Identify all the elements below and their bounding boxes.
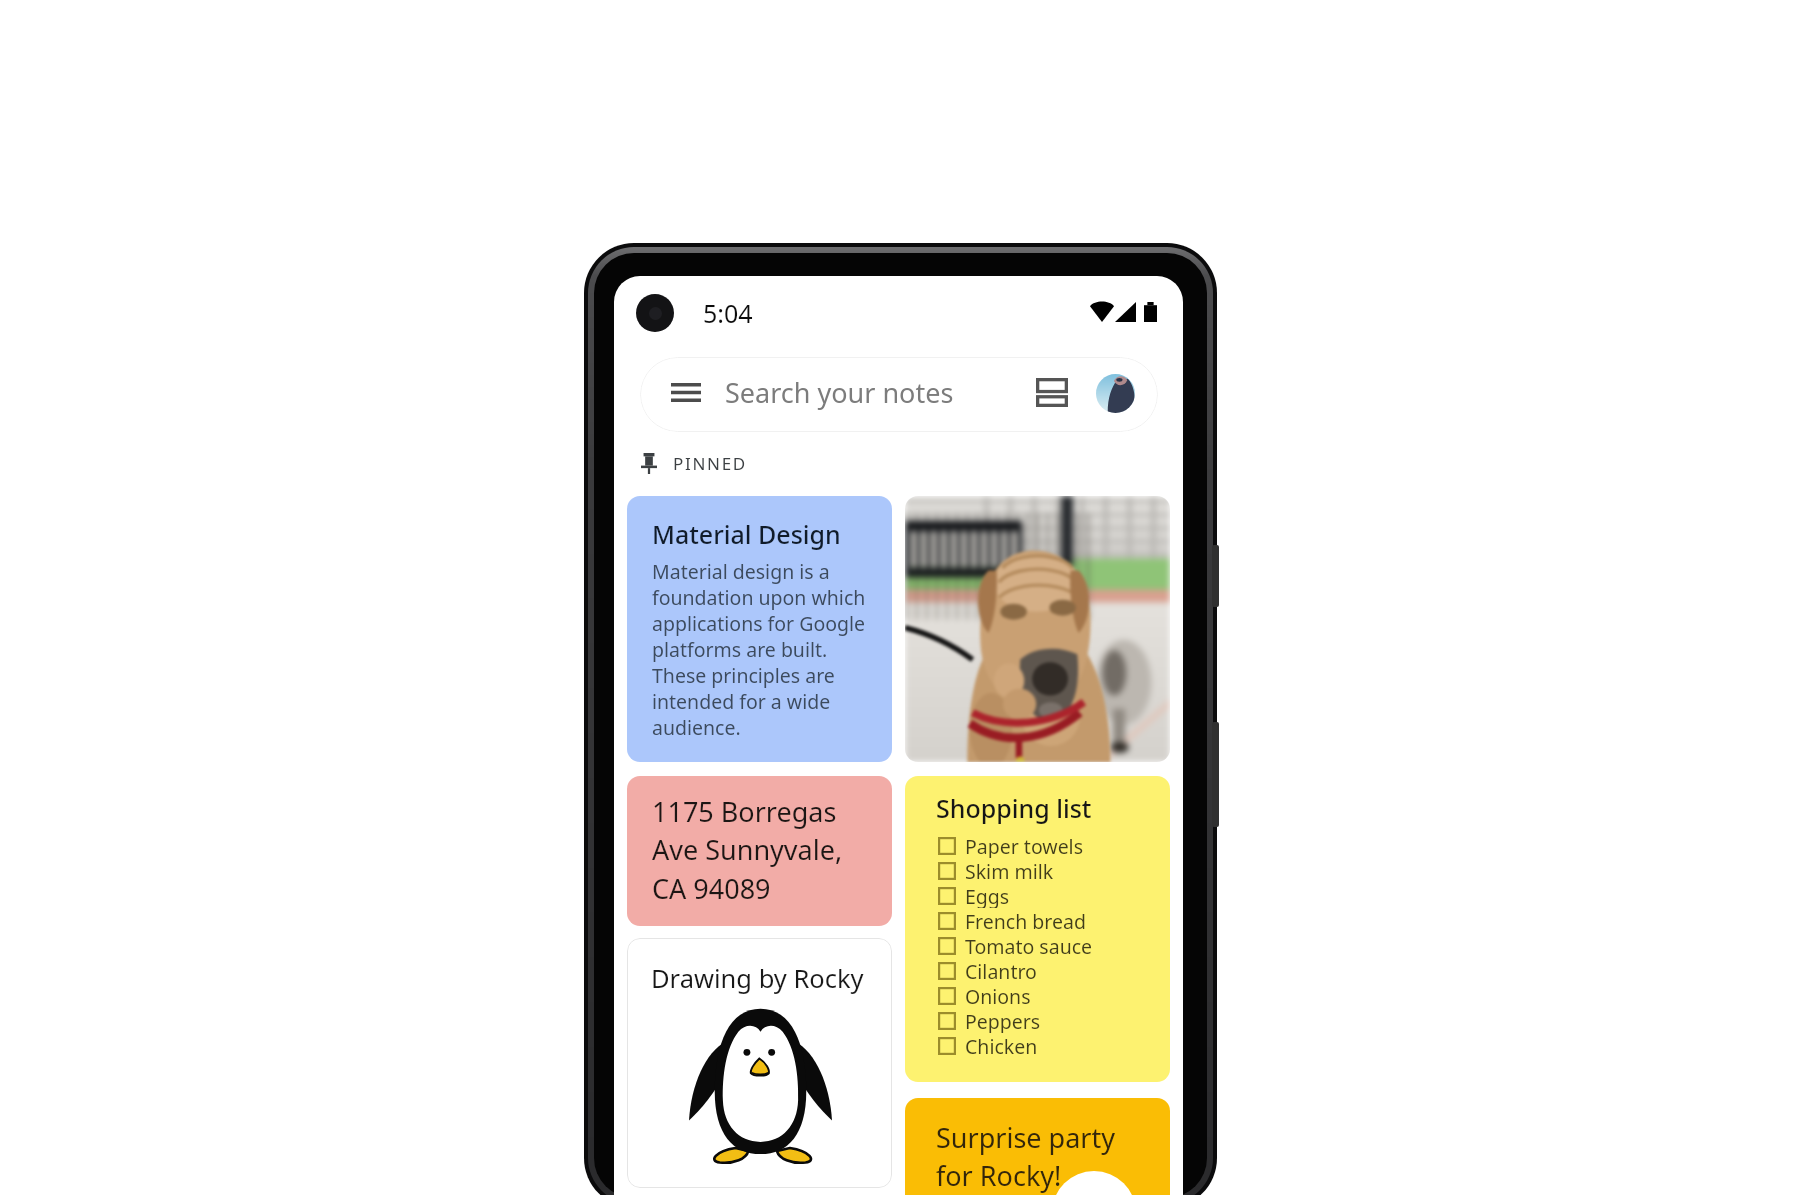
button[interactable]: Paper towels (938, 833, 1083, 858)
button[interactable]: Skim milk (938, 858, 1054, 883)
button[interactable]: Tomato sauce (938, 933, 1093, 958)
staticText: Material design is a foundation upon whi… (652, 558, 870, 740)
button[interactable]: Onions (938, 983, 1031, 1008)
staticText: PINNED (673, 452, 747, 475)
button[interactable]: Photo of a dog (905, 496, 1170, 762)
staticText: Cilantro (965, 958, 1037, 983)
button[interactable]: Peppers (938, 1008, 1041, 1033)
button[interactable]: Drawing by Rocky (627, 938, 892, 1188)
button[interactable]: Open navigation menu (671, 383, 701, 402)
button[interactable]: Open navigation menu (640, 357, 1158, 432)
staticText: 1175 Borregas Ave Sunnyvale, CA 94089 (652, 793, 852, 907)
button[interactable]: Chicken (938, 1033, 1038, 1058)
staticText: 5:04 (703, 296, 753, 330)
button[interactable]: Shopping list (905, 776, 1170, 1082)
button[interactable]: Change view mode (1036, 378, 1068, 407)
staticText: Material Design (652, 517, 841, 551)
button[interactable]: French bread (938, 908, 1086, 933)
staticText: Search your notes (725, 374, 954, 411)
staticText: Drawing by Rocky (651, 961, 864, 996)
staticText: Paper towels (965, 833, 1083, 858)
button[interactable]: Cilantro (938, 958, 1037, 983)
button[interactable]: Surprise party for Rocky! (905, 1098, 1170, 1195)
button[interactable]: Material Design (627, 496, 892, 762)
button[interactable]: 1175 Borregas Ave Sunnyvale, CA 94089 (627, 776, 892, 926)
staticText: Peppers (965, 1008, 1041, 1033)
staticText: French bread (965, 908, 1086, 933)
staticText: Chicken (965, 1033, 1038, 1058)
button[interactable]: Create new note (1052, 1171, 1136, 1195)
staticText: Onions (965, 983, 1031, 1008)
staticText: Eggs (965, 883, 1010, 908)
button[interactable]: Eggs (938, 883, 1010, 908)
staticText: Surprise party for Rocky! (936, 1119, 1132, 1194)
staticText: Tomato sauce (965, 933, 1093, 958)
staticText: Shopping list (936, 791, 1092, 825)
button[interactable]: Account profile (1096, 374, 1135, 413)
staticText: Skim milk (965, 858, 1054, 883)
